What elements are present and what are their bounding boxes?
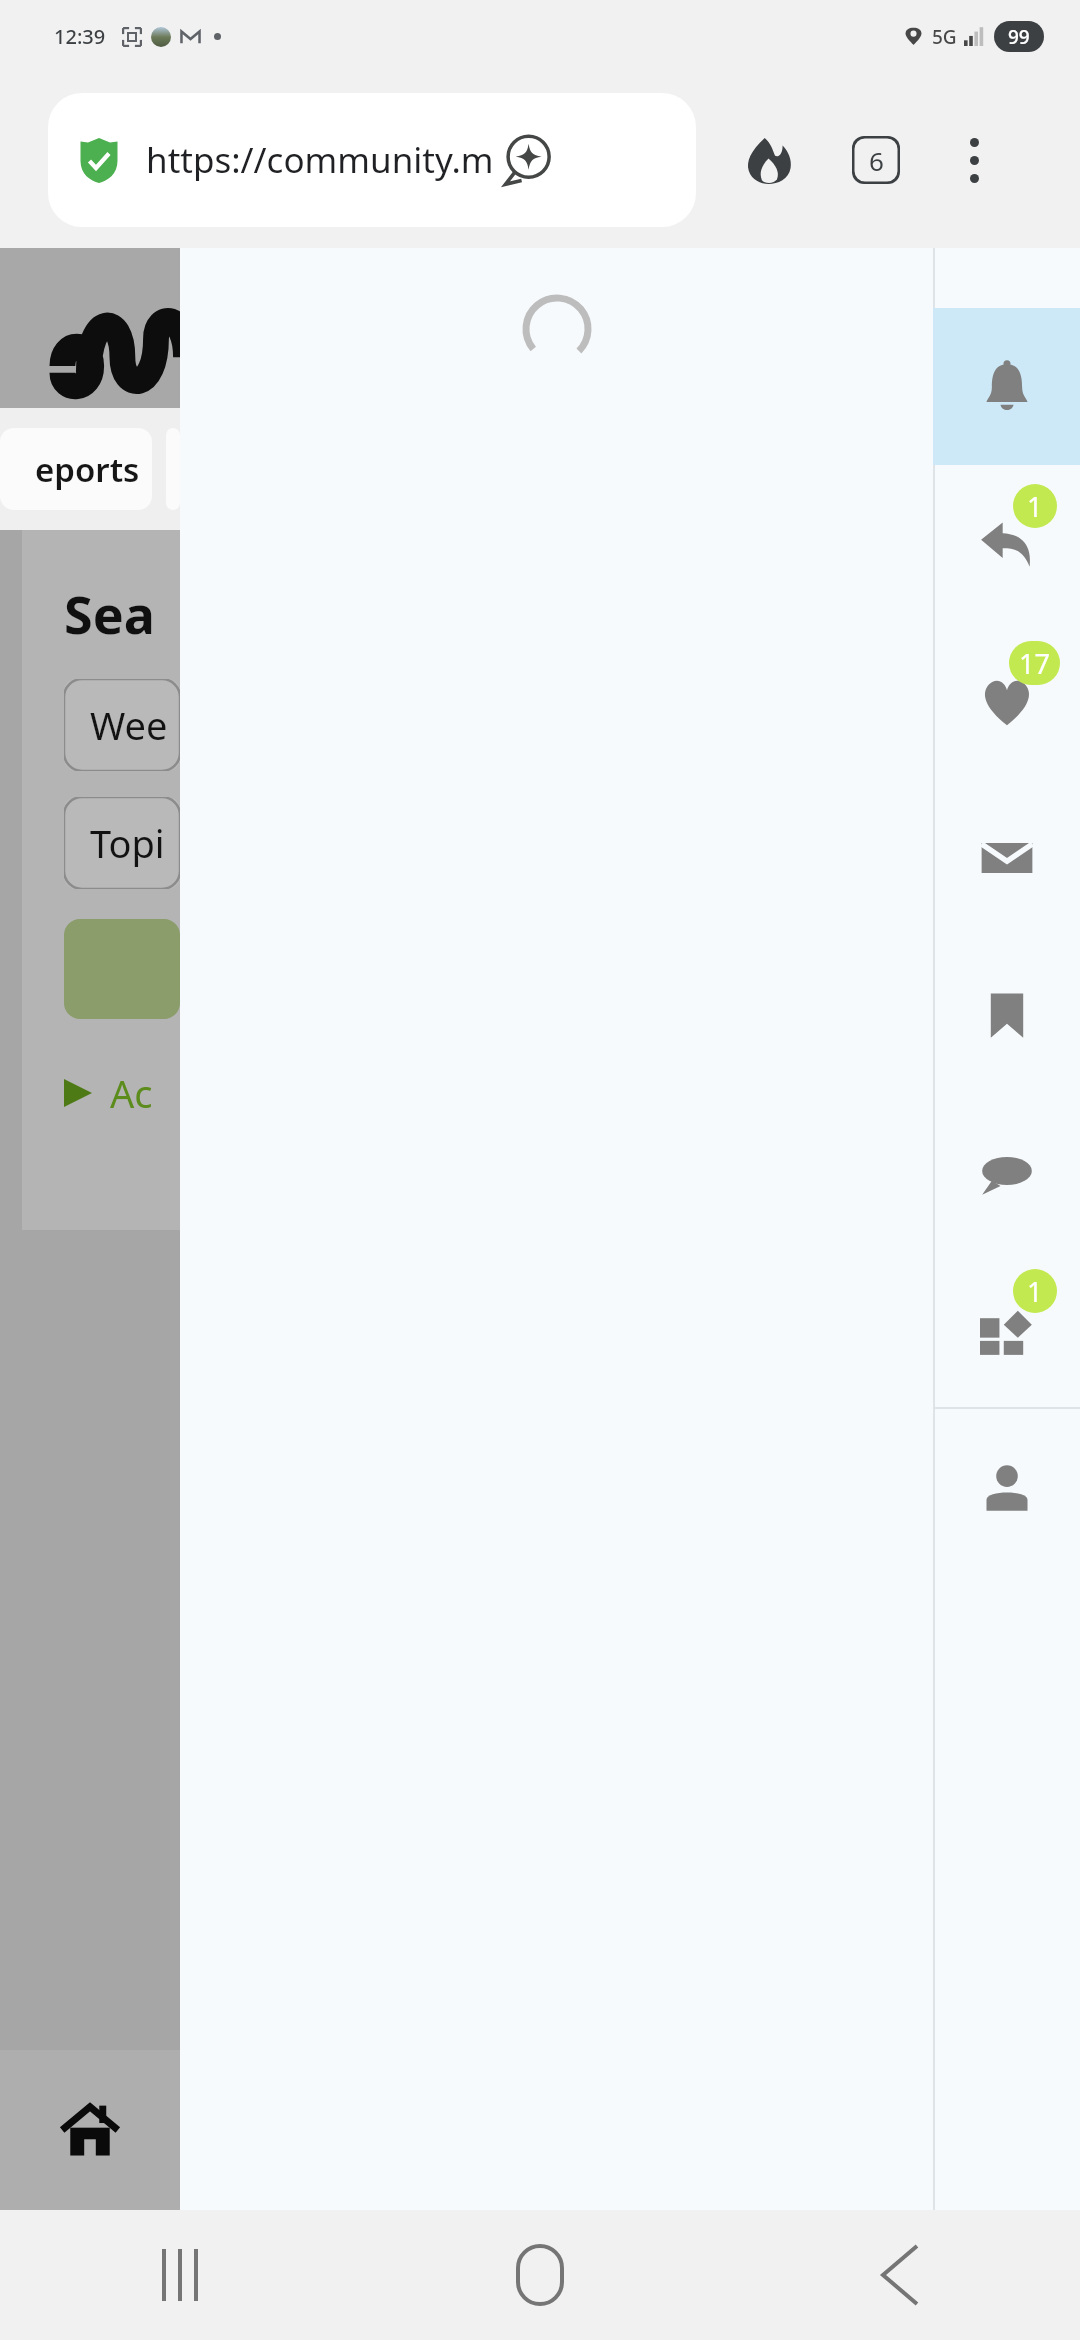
button[interactable]: Apps (933, 1250, 1080, 1407)
staticText: Topi (90, 817, 165, 869)
button[interactable]: Home (35, 2075, 145, 2185)
staticText: eports (35, 447, 140, 492)
button[interactable]: https://community.m (48, 93, 696, 227)
staticText: 12:39 (54, 23, 106, 50)
button[interactable]: Tabs: 6 (834, 118, 918, 202)
button[interactable]: Back (720, 2210, 1080, 2340)
staticText: Wee (90, 699, 168, 751)
button[interactable]: Likes (933, 622, 1080, 779)
staticText: 1 (1027, 1273, 1043, 1310)
button[interactable]: Topi (64, 797, 180, 889)
button[interactable]: Chat (933, 1093, 1080, 1250)
button[interactable]: Incognito (726, 118, 810, 202)
staticText: https://community.m (146, 136, 494, 184)
button[interactable]: More options (932, 118, 1016, 202)
staticText: 5G (932, 24, 957, 50)
button[interactable]: Profile (933, 1409, 1080, 1566)
staticText: Sea (64, 578, 155, 649)
staticText: 17 (1019, 645, 1050, 682)
button[interactable]: Wee (64, 679, 180, 771)
staticText: Ac (110, 1067, 153, 1119)
staticText: 6 (869, 143, 884, 178)
button[interactable]: Recent apps (0, 2210, 360, 2340)
button[interactable] (64, 919, 180, 1019)
staticText: 99 (1008, 24, 1030, 50)
other: AI assistant (500, 133, 554, 187)
button[interactable]: Replies (933, 465, 1080, 622)
staticText: 1 (1027, 488, 1043, 525)
button[interactable]: eports (0, 428, 152, 510)
button[interactable]: Messages (933, 779, 1080, 936)
button[interactable]: Home (360, 2210, 720, 2340)
button[interactable]: Notifications (933, 308, 1080, 465)
button[interactable]: Bookmarks (933, 936, 1080, 1093)
